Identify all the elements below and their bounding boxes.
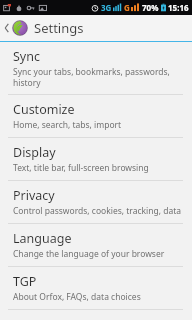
staticText: Language <box>13 230 72 247</box>
button[interactable]: Language <box>0 224 192 266</box>
staticText: Sync <box>13 48 40 65</box>
staticText: G <box>124 2 130 13</box>
staticText: 3G <box>101 2 112 13</box>
staticText: TGP <box>13 273 37 290</box>
staticText: 15:16 <box>168 2 189 13</box>
staticText: Customize <box>13 101 75 118</box>
staticText: Control passwords, cookies, tracking, da… <box>13 205 182 217</box>
staticText: Settings <box>34 19 84 37</box>
staticText: Display <box>13 144 56 161</box>
staticText: Home, search, tabs, import <box>13 119 122 131</box>
button[interactable]: Display <box>0 138 192 180</box>
staticText: Change the language of your browser <box>13 248 165 260</box>
staticText: Privacy <box>13 187 55 204</box>
button[interactable]: Customize <box>0 95 192 137</box>
button[interactable]: Sync <box>0 42 192 94</box>
staticText: 70% <box>142 2 159 13</box>
button[interactable]: Privacy <box>0 181 192 223</box>
button[interactable]: Navigate up, Settings <box>0 15 192 41</box>
button[interactable]: TGP <box>0 267 192 309</box>
staticText: Sync your tabs, bookmarks, passwords, hi… <box>13 66 182 88</box>
staticText: About Orfox, FAQs, data choices <box>13 291 141 303</box>
staticText: Text, title bar, full-screen browsing <box>13 162 149 174</box>
